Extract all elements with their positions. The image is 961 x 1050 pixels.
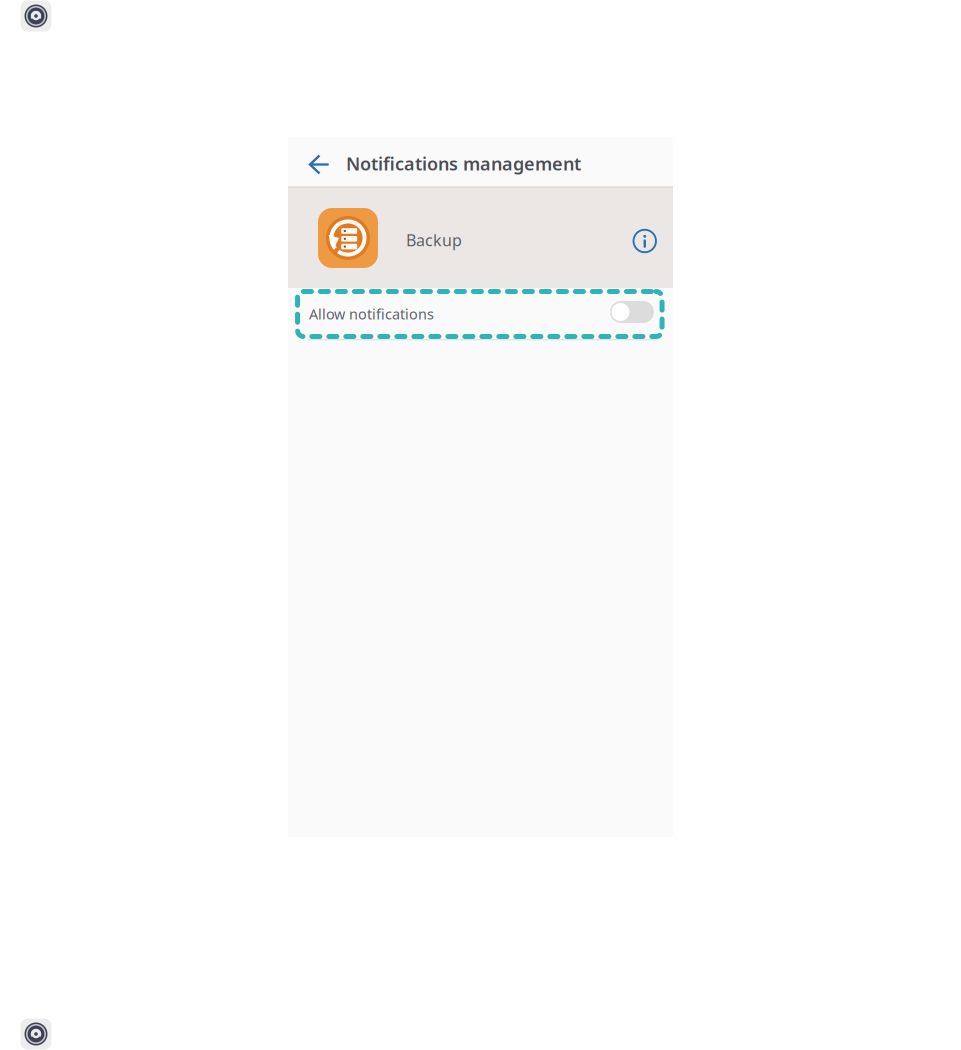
button[interactable]: Info [630, 227, 673, 249]
staticText: Backup [406, 229, 462, 251]
button[interactable]: Allow notifications [288, 288, 673, 336]
staticText: Allow notifications [309, 304, 434, 323]
staticText: Notifications management [346, 151, 581, 175]
button[interactable]: Back [288, 137, 344, 188]
